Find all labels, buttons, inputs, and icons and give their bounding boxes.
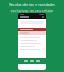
- staticText: Receba ofertas e novidades: [9, 2, 55, 7]
- staticText: exclusivas no seu celular: [10, 8, 53, 13]
